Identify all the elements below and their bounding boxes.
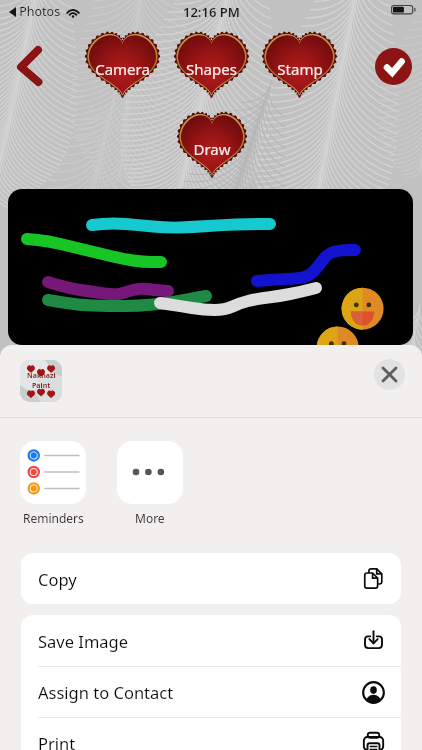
staticText: Save Image [38,630,129,652]
button[interactable]: Back [12,44,56,90]
button[interactable]: Reminders [20,441,86,526]
staticText: Photos [16,3,61,20]
button[interactable]: Draw [176,111,248,179]
staticText: Assign to Contact [38,681,174,703]
button[interactable]: Print [21,718,401,750]
button[interactable]: Shapes [173,31,250,99]
staticText: 12:16 PM [183,3,240,21]
button[interactable]: Done [375,48,412,85]
button[interactable]: Copy [21,553,401,604]
staticText: Paint [32,381,51,391]
staticText: Shapes [186,59,237,79]
button[interactable]: Assign to Contact [21,667,401,717]
button[interactable]: Camera [84,31,161,99]
button[interactable]: Nakhazi [20,360,62,402]
button[interactable]: Stamp [261,31,338,99]
button[interactable]: More [117,441,183,526]
staticText: Nakhazi [27,371,56,381]
staticText: Camera [95,59,150,79]
staticText: Copy [38,568,77,590]
button[interactable]: Save Image [21,615,401,666]
staticText: Stamp [277,59,323,79]
staticText: Print [38,732,76,750]
staticText: Draw [193,139,231,159]
staticText: Reminders [23,510,84,526]
staticText: More [135,510,165,526]
button[interactable]: Close [374,359,405,390]
